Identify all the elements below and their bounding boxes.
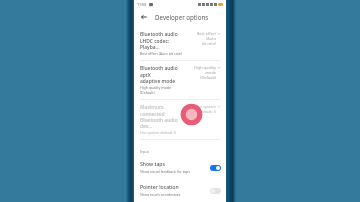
staticText: Best effort (Auto bit rate) (188, 31, 216, 46)
button[interactable]: Bluetooth audio LHDC codec: Playba... (134, 27, 226, 60)
staticText: Best effort (Auto bit rate) (140, 51, 182, 56)
staticText: Input (140, 149, 149, 154)
staticText: Show touch coordinates (140, 192, 181, 197)
button[interactable]: Bluetooth audio aptX adaptive mode (134, 61, 226, 99)
staticText: Bluetooth audio LHDC codec: Playba... (140, 31, 185, 50)
staticText: Bluetooth audio aptX adaptive mode (140, 65, 185, 84)
staticText: Developer options (155, 13, 209, 21)
button[interactable]: Pointer location (134, 179, 226, 202)
staticText: High quality mode (Default) (140, 85, 172, 95)
button[interactable]: On (210, 165, 221, 171)
button[interactable]: Maximum connected Bluetooth audio dev... (134, 100, 226, 139)
button[interactable]: Off (210, 188, 221, 194)
button[interactable]: Show taps (134, 156, 226, 179)
button[interactable]: Back (139, 12, 149, 22)
staticText: Use system default: 5 (188, 104, 216, 114)
staticText: High quality mode (Default) (188, 65, 216, 80)
staticText: 11:50 (137, 2, 147, 7)
staticText: Show taps (140, 161, 165, 168)
staticText: Use system default: 5 (140, 130, 177, 135)
staticText: Maximum connected Bluetooth audio dev... (140, 104, 185, 129)
staticText: Pointer location (140, 184, 179, 191)
staticText: Show visual feedback for taps (140, 169, 191, 174)
